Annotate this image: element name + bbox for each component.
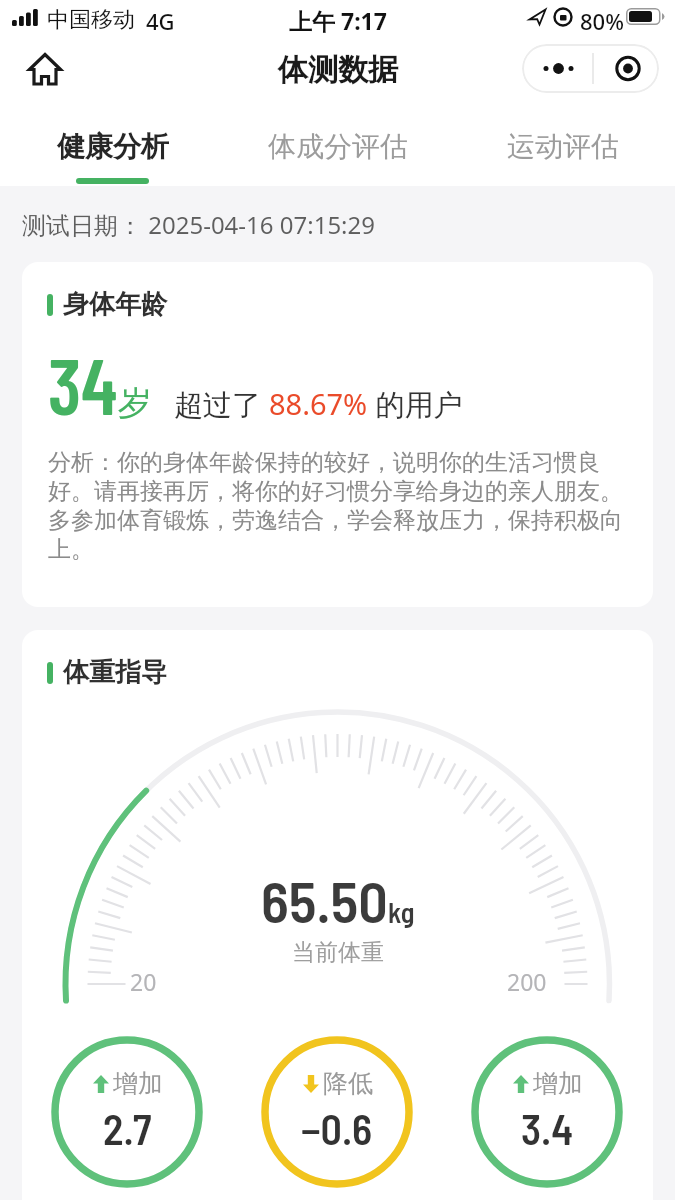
staticText: 测试日期： 2025-04-16 07:15:29 xyxy=(22,208,375,241)
staticText: 3.4 xyxy=(521,1103,574,1153)
staticText: 4G xyxy=(146,6,175,36)
button[interactable] xyxy=(522,44,659,93)
button[interactable] xyxy=(27,51,63,87)
staticText: 体测数据 xyxy=(278,51,398,89)
button[interactable]: 体成分评估 xyxy=(225,106,450,186)
button[interactable]: 降低 xyxy=(261,1036,413,1188)
button[interactable]: 增加 xyxy=(51,1036,203,1188)
staticText: 身体年龄 xyxy=(63,288,167,321)
staticText: 2.7 xyxy=(103,1103,152,1153)
staticText: 中国移动 xyxy=(47,6,135,34)
staticText: 体重指导 xyxy=(63,656,167,689)
staticText: 增加 xyxy=(113,1068,163,1099)
staticText: 上。 xyxy=(48,535,94,564)
button[interactable]: 增加 xyxy=(471,1036,623,1188)
staticText: 的用户 xyxy=(368,384,463,424)
staticText: 34 xyxy=(48,337,118,431)
staticText: 增加 xyxy=(533,1068,583,1099)
staticText: 分析：你的身体年龄保持的较好，说明你的生活习惯良 xyxy=(48,448,600,477)
staticText: 多参加体育锻炼，劳逸结合，学会释放压力，保持积极向 xyxy=(48,506,623,535)
staticText: −0.6 xyxy=(301,1103,373,1153)
staticText: 80% xyxy=(580,6,624,36)
button[interactable]: 健康分析 xyxy=(0,106,225,186)
staticText: 200 xyxy=(507,966,547,992)
staticText: 体成分评估 xyxy=(268,129,408,164)
staticText: 当前体重 xyxy=(292,938,384,967)
button[interactable]: 运动评估 xyxy=(450,106,675,186)
staticText: 健康分析 xyxy=(57,129,169,164)
staticText: 岁 xyxy=(118,382,152,425)
staticText: 上午 7:17 xyxy=(289,5,387,36)
staticText: 降低 xyxy=(323,1068,373,1099)
staticText: kg xyxy=(388,895,415,929)
staticText: 88.67% xyxy=(269,384,368,423)
staticText: 超过了 xyxy=(174,384,269,424)
staticText: 20 xyxy=(130,966,157,992)
staticText: 好。请再接再厉，将你的好习惯分享给身边的亲人朋友。 xyxy=(48,477,623,506)
staticText: 65.50 xyxy=(261,865,388,935)
staticText: 运动评估 xyxy=(507,129,619,164)
